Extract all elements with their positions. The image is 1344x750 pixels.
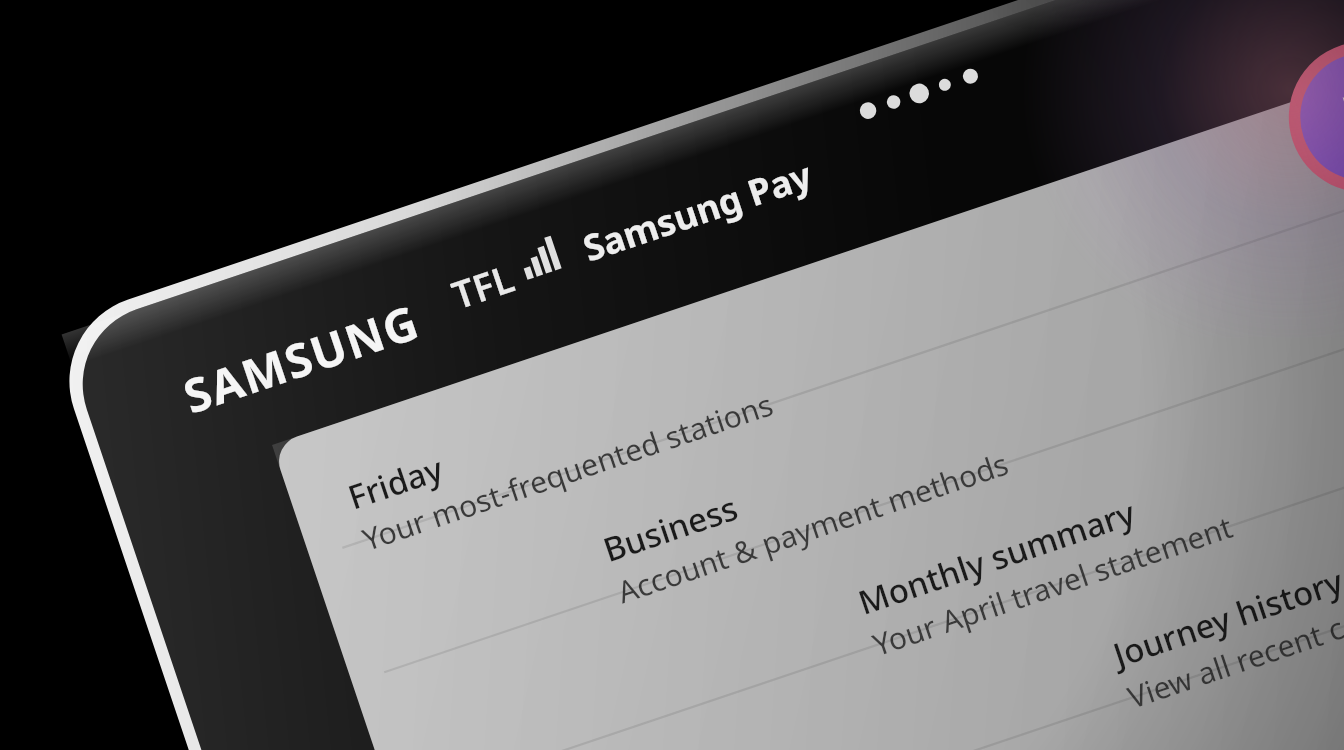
button[interactable]: Samsung phone showing a settings list: [0, 0, 1344, 750]
